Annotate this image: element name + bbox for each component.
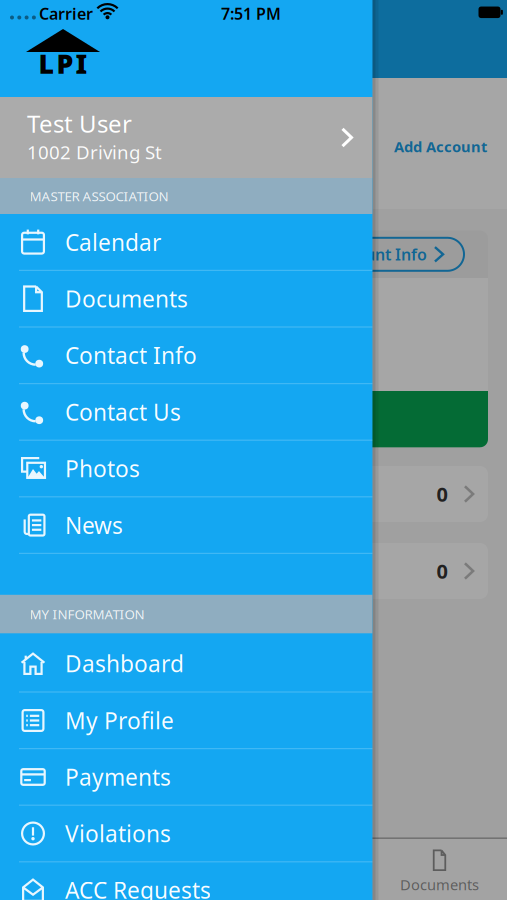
staticText: Contact Us	[65, 397, 181, 427]
staticText: ACC Requests	[65, 875, 211, 900]
staticText: Documents	[400, 875, 479, 894]
staticText: 7:51 PM	[221, 3, 281, 24]
button[interactable]: Make a Payment	[20, 391, 488, 447]
staticText: News	[65, 510, 123, 540]
button[interactable]: Add Account	[307, 131, 487, 161]
button[interactable]: 0	[20, 543, 488, 599]
staticText: Test User	[27, 108, 132, 139]
staticText: Account Info	[328, 244, 427, 265]
staticText: Carrier	[39, 3, 93, 24]
button[interactable]: Dashboard	[0, 635, 372, 692]
button[interactable]: 0	[20, 466, 488, 522]
button[interactable]: Test User	[0, 97, 372, 178]
staticText: LPI	[38, 46, 87, 81]
staticText: My Profile	[65, 705, 174, 735]
button[interactable]: Violations	[0, 805, 372, 862]
button[interactable]: Documents	[376, 842, 502, 900]
button[interactable]: Documents	[0, 270, 372, 327]
staticText: MASTER ASSOCIATION	[29, 187, 168, 205]
staticText: 0	[436, 558, 447, 584]
button[interactable]: Contact Info	[0, 327, 372, 384]
button[interactable]: Payments	[0, 749, 372, 805]
staticText: MY INFORMATION	[29, 605, 144, 623]
button[interactable]: Calendar	[0, 214, 372, 270]
staticText: 1002 Driving St	[27, 140, 162, 164]
button[interactable]: Contact Us	[0, 384, 372, 440]
staticText: Photos	[65, 453, 140, 483]
staticText: Add Account	[394, 137, 487, 156]
staticText: Dashboard	[65, 648, 184, 678]
staticText: Violations	[65, 818, 171, 848]
button[interactable]: ACC Requests	[0, 862, 372, 900]
button[interactable]: News	[0, 497, 372, 553]
staticText: Contact Info	[65, 340, 197, 370]
button[interactable]: Photos	[0, 440, 372, 497]
staticText: Documents	[65, 284, 188, 314]
staticText: Payments	[65, 762, 171, 792]
staticText: Calendar	[65, 227, 161, 257]
staticText: 0	[436, 481, 447, 507]
button[interactable]: My Profile	[0, 692, 372, 749]
button[interactable]: Account Info	[314, 238, 464, 271]
